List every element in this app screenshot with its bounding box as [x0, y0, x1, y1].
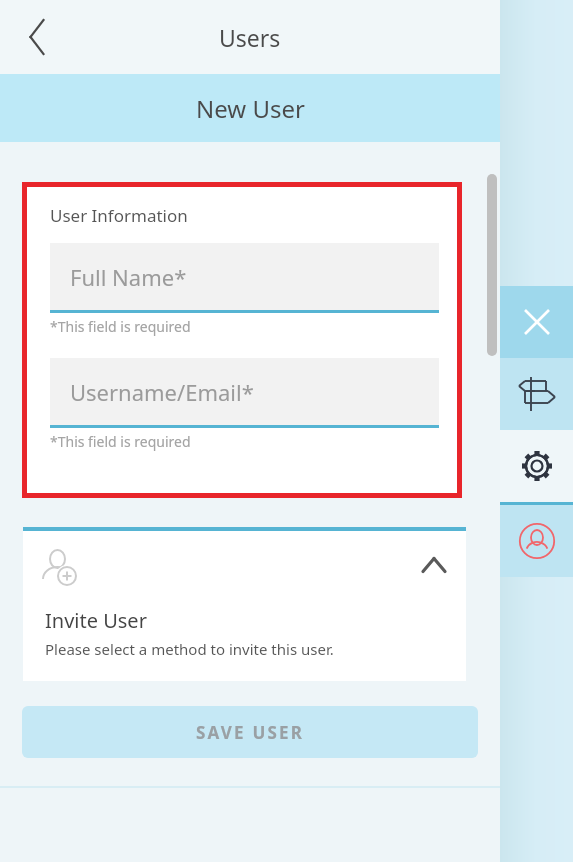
button[interactable]: Settings	[500, 430, 573, 502]
button[interactable]: Close	[500, 286, 573, 358]
staticText: SAVE USER	[196, 721, 305, 744]
staticText: Full Name*	[70, 262, 187, 292]
staticText: *This field is required	[50, 317, 191, 336]
staticText: Users	[219, 22, 281, 53]
button[interactable]: Profile	[500, 505, 573, 577]
button[interactable]: Collapse	[414, 545, 454, 585]
staticText: New User	[196, 92, 305, 125]
staticText: User Information	[50, 204, 188, 227]
staticText: *This field is required	[50, 432, 191, 451]
button[interactable]: Full Name*	[50, 243, 439, 310]
button[interactable]: Back	[10, 10, 64, 64]
button[interactable]: User Information	[27, 187, 457, 493]
button[interactable]: Directions	[500, 358, 573, 430]
staticText: Username/Email*	[70, 377, 254, 407]
button[interactable]: Username/Email*	[50, 358, 439, 425]
staticText: Please select a method to invite this us…	[45, 639, 334, 659]
staticText: Invite User	[45, 607, 147, 634]
button[interactable]: SAVE USER	[22, 706, 478, 758]
button[interactable]: Collapse	[23, 527, 466, 681]
